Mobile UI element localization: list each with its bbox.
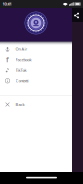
button[interactable]: On Air [0,44,72,54]
button[interactable]: Back [0,99,72,110]
staticText: TikTok [16,67,27,73]
staticText: Back [16,102,25,107]
button[interactable]: f [0,54,72,65]
staticText: Facebook [16,57,32,62]
button[interactable]: Share [73,12,80,19]
button[interactable]: TikTok [0,65,72,75]
staticText: Contatti [16,78,29,83]
staticText: On Air [16,46,28,52]
staticText: f [6,55,9,64]
staticText: 10:41 [2,1,11,7]
button[interactable]: Contatti [0,75,72,86]
